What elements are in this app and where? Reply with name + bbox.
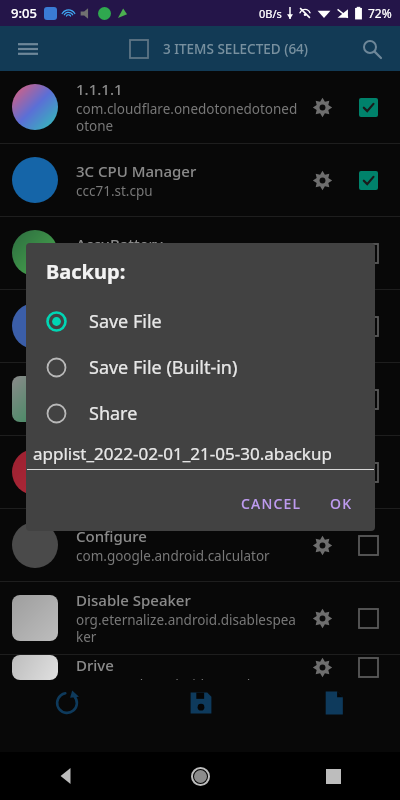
button[interactable]: Home — [134, 752, 267, 800]
button[interactable]: Select all — [121, 31, 157, 67]
button[interactable]: Settings — [302, 452, 342, 492]
staticText: Authenticator — [76, 298, 176, 318]
staticText: 72% — [368, 5, 392, 21]
button[interactable]: Select app — [348, 598, 388, 638]
button[interactable]: Select app — [348, 379, 388, 419]
staticText: AccuBattery — [76, 234, 163, 254]
staticText: com.google.android.apps.docs — [76, 676, 272, 680]
button[interactable]: Save File — [26, 298, 375, 344]
button[interactable]: Select app — [348, 87, 388, 127]
button[interactable]: Settings — [302, 525, 342, 565]
staticText: com.cloudflare.onedotonedotonedotone — [76, 100, 302, 135]
staticText: 3 ITEMS SELECTED (64) — [163, 40, 309, 58]
staticText: ccc71.st.cpu — [76, 182, 153, 200]
button[interactable]: Select app — [348, 160, 388, 200]
staticText: applist_2022-02-01_21-05-30.abackup — [33, 442, 332, 465]
button[interactable]: Search — [350, 27, 394, 71]
button[interactable]: Drive — [0, 655, 400, 680]
button[interactable]: New file — [267, 680, 400, 752]
button[interactable]: Select app — [348, 306, 388, 346]
staticText: Save File — [89, 309, 162, 334]
button[interactable]: Settings — [302, 655, 342, 680]
staticText: org.eternalize.android.disablespeaker — [76, 611, 302, 646]
staticText: Save File (Built-in) — [89, 355, 238, 380]
staticText: 9:05 — [11, 4, 37, 22]
button[interactable]: Authenticator — [0, 290, 400, 362]
button[interactable]: Save — [134, 680, 267, 752]
staticText: com.digibites.accubattery — [76, 255, 240, 273]
button[interactable]: Select app — [348, 233, 388, 273]
button[interactable]: Bookmarks — [0, 436, 400, 508]
staticText: 3C CPU Manager — [76, 161, 197, 181]
staticText: Drive — [76, 655, 114, 675]
button[interactable]: Settings — [302, 87, 342, 127]
button[interactable]: AccuBattery — [0, 217, 400, 289]
staticText: 0B/s — [259, 6, 282, 21]
staticText: Bookmarks — [76, 453, 158, 473]
button[interactable]: Settings — [302, 160, 342, 200]
staticText: OK — [330, 494, 353, 513]
button[interactable]: CANCEL — [231, 486, 312, 521]
button[interactable]: 3C CPU Manager — [0, 144, 400, 216]
button[interactable]: Refresh — [0, 680, 134, 752]
button[interactable]: Menu — [6, 27, 50, 71]
button[interactable]: Share — [26, 390, 375, 436]
button[interactable]: Recents — [267, 752, 400, 800]
staticText: Disable Speaker — [76, 590, 191, 610]
button[interactable]: Select app — [348, 452, 388, 492]
staticText: Backup: — [46, 258, 126, 285]
button[interactable]: Battery — [0, 363, 400, 435]
staticText: Configure — [76, 526, 147, 546]
button[interactable]: Disable Speaker — [0, 582, 400, 654]
staticText: com.google.android.apps.authenticator2 — [76, 319, 302, 354]
staticText: com.google.android.calculator — [76, 547, 270, 565]
staticText: com.example.battery — [76, 401, 211, 419]
button[interactable]: 1.1.1.1 — [0, 71, 400, 143]
staticText: CANCEL — [241, 494, 302, 513]
button[interactable]: Save File (Built-in) — [26, 344, 375, 390]
button[interactable]: Settings — [302, 233, 342, 273]
button[interactable]: Select app — [348, 655, 388, 680]
button[interactable]: Select app — [348, 525, 388, 565]
staticText: Share — [89, 401, 138, 426]
staticText: 1.1.1.1 — [76, 79, 123, 99]
button[interactable]: OK — [320, 486, 363, 521]
button[interactable]: Settings — [302, 598, 342, 638]
button[interactable]: Configure — [0, 509, 400, 581]
button[interactable]: Back — [0, 752, 134, 800]
